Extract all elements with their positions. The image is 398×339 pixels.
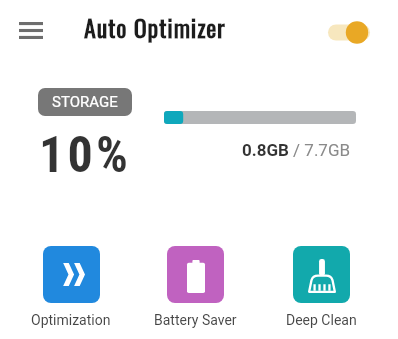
- button[interactable]: Optimization: [11, 246, 131, 328]
- button[interactable]: Open navigation menu: [10, 14, 52, 46]
- staticText: Optimization: [31, 312, 111, 328]
- button[interactable]: Deep Clean: [261, 246, 381, 328]
- button[interactable]: Auto optimizer on: [318, 15, 376, 47]
- staticText: 0.8GB / 7.7GB: [242, 140, 351, 160]
- staticText: Deep Clean: [286, 312, 357, 328]
- staticText: 10%: [39, 126, 132, 185]
- staticText: Battery Saver: [154, 312, 237, 328]
- button[interactable]: STORAGE: [38, 88, 132, 116]
- staticText: STORAGE: [52, 93, 118, 111]
- staticText: Auto Optimizer: [84, 9, 226, 45]
- button[interactable]: Battery Saver: [135, 246, 255, 328]
